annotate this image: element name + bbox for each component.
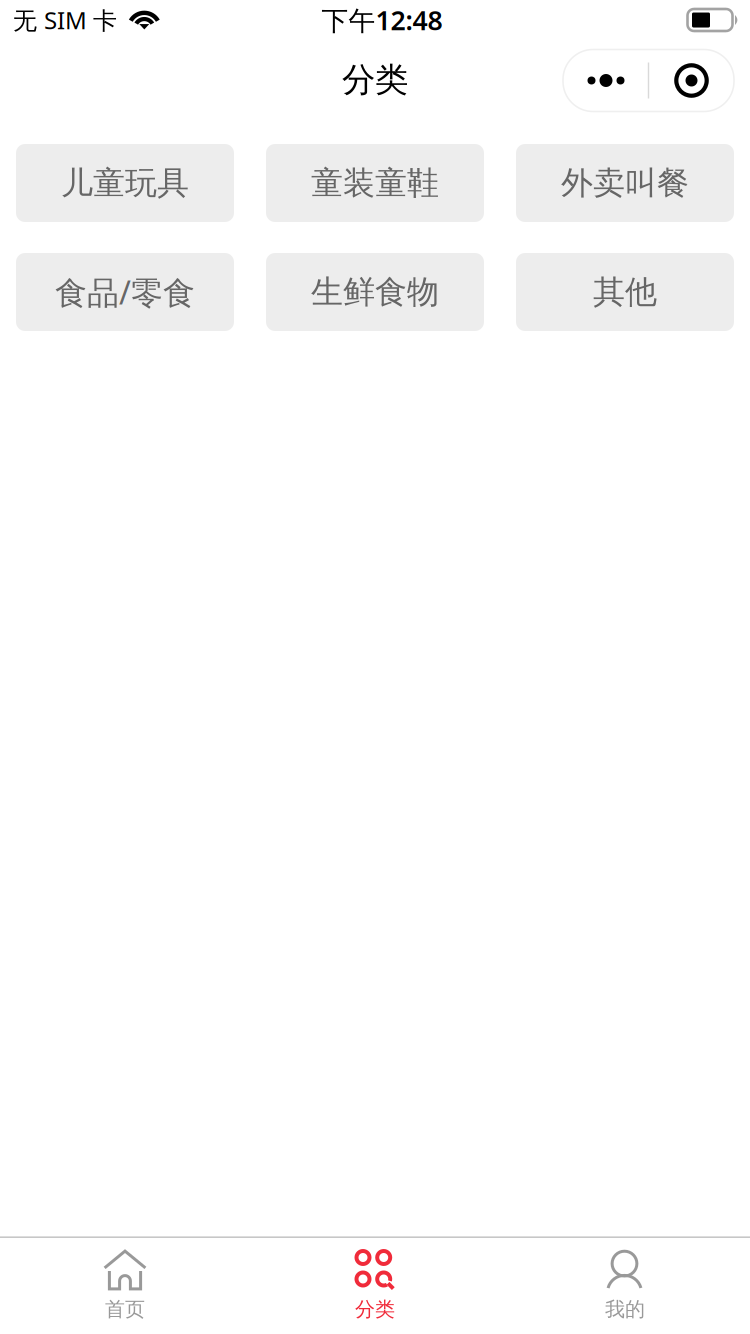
button[interactable]: 儿童玩具 <box>16 144 234 222</box>
button[interactable]: 外卖叫餐 <box>516 144 734 222</box>
button[interactable]: 食品/零食 <box>16 253 234 331</box>
staticText: 下午12:48 <box>321 2 442 38</box>
button[interactable]: 首页 <box>0 1238 250 1334</box>
staticText: 外卖叫餐 <box>561 163 689 203</box>
button[interactable]: Close <box>649 49 734 111</box>
button[interactable]: 生鲜食物 <box>266 253 484 331</box>
staticText: 儿童玩具 <box>61 163 189 203</box>
staticText: 生鲜食物 <box>311 272 439 312</box>
staticText: 童装童鞋 <box>311 163 439 203</box>
staticText: 分类 <box>342 59 408 100</box>
button[interactable]: 其他 <box>516 253 734 331</box>
staticText: 我的 <box>605 1297 645 1322</box>
button[interactable]: 我的 <box>500 1238 750 1334</box>
button[interactable]: 童装童鞋 <box>266 144 484 222</box>
button[interactable]: 分类 <box>250 1238 500 1334</box>
staticText: 分类 <box>355 1297 395 1322</box>
staticText: 无 SIM 卡 <box>13 4 117 36</box>
staticText: 其他 <box>593 272 657 312</box>
staticText: 食品/零食 <box>55 271 195 313</box>
staticText: 首页 <box>105 1297 145 1322</box>
button[interactable]: More <box>563 49 649 111</box>
